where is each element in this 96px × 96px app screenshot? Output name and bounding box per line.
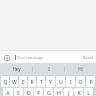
- staticText: A: [6, 89, 10, 96]
- button[interactable]: J: [64, 88, 73, 96]
- button[interactable]: Y: [46, 76, 55, 87]
- button[interactable]: I: [66, 76, 75, 87]
- button[interactable]: Text message: [12, 53, 80, 62]
- button[interactable]: Send: [82, 53, 94, 62]
- staticText: O: [78, 78, 83, 85]
- staticText: P: [89, 78, 93, 85]
- staticText: S: [17, 89, 20, 96]
- staticText: Q: [3, 78, 8, 85]
- staticText: R: [30, 78, 34, 85]
- staticText: E: [22, 78, 25, 85]
- button[interactable]: D: [24, 88, 33, 96]
- button[interactable]: K: [74, 88, 83, 96]
- staticText: L: [87, 89, 90, 96]
- button[interactable]: Hey: [0, 63, 32, 75]
- button[interactable]: Add attachment: [2, 53, 11, 62]
- staticText: G: [47, 89, 51, 96]
- button[interactable]: O: [76, 76, 85, 87]
- staticText: J: [68, 89, 70, 96]
- button[interactable]: H: [54, 88, 63, 96]
- staticText: U: [59, 78, 63, 85]
- button[interactable]: A: [3, 88, 13, 96]
- staticText: I: [70, 78, 72, 85]
- staticText: K: [77, 89, 81, 96]
- staticText: D: [27, 89, 31, 96]
- button[interactable]: W: [10, 76, 18, 87]
- button[interactable]: I: [33, 63, 64, 75]
- staticText: Send: [83, 55, 93, 61]
- button[interactable]: P: [86, 76, 95, 87]
- button[interactable]: Hi: [65, 63, 96, 75]
- button[interactable]: S: [14, 88, 23, 96]
- button[interactable]: E: [19, 76, 27, 87]
- staticText: T: [40, 78, 43, 85]
- staticText: F: [37, 89, 40, 96]
- staticText: Hi: [78, 66, 83, 72]
- staticText: Y: [49, 78, 52, 85]
- button[interactable]: Q: [1, 76, 9, 87]
- button[interactable]: U: [56, 76, 65, 87]
- staticText: W: [12, 78, 17, 85]
- staticText: Hey: [12, 66, 21, 72]
- button[interactable]: R: [28, 76, 36, 87]
- staticText: H: [57, 89, 61, 96]
- button[interactable]: L: [84, 88, 93, 96]
- staticText: I: [48, 66, 50, 72]
- button[interactable]: F: [34, 88, 43, 96]
- button[interactable]: G: [44, 88, 53, 96]
- staticText: Text message: [17, 55, 44, 61]
- button[interactable]: T: [37, 76, 45, 87]
